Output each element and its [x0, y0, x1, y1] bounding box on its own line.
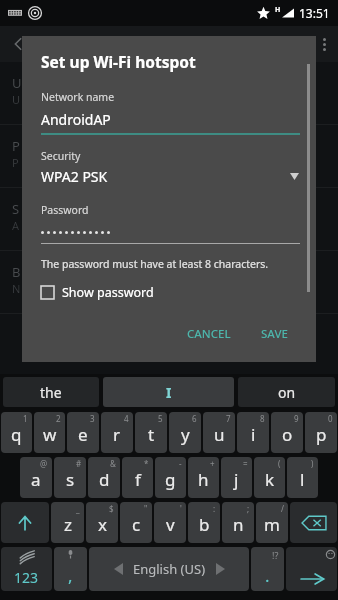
- button[interactable]: ;: [222, 502, 254, 543]
- button[interactable]: CANCEL: [179, 320, 239, 348]
- staticText: P: [12, 137, 20, 155]
- staticText: A: [12, 218, 20, 233]
- staticText: p: [316, 423, 327, 446]
- staticText: ): [311, 458, 314, 469]
- staticText: j: [234, 468, 239, 491]
- button[interactable]: 3: [67, 412, 99, 453]
- button[interactable]: :: [188, 502, 220, 543]
- staticText: =: [243, 458, 248, 469]
- staticText: /: [281, 503, 284, 514]
- staticText: e: [78, 423, 88, 446]
- staticText: s: [66, 468, 75, 491]
- button[interactable]: 123: [1, 547, 52, 591]
- staticText: q: [11, 423, 22, 446]
- staticText: t: [148, 423, 155, 446]
- staticText: d: [99, 468, 110, 491]
- button[interactable]: SAVE: [253, 320, 296, 348]
- button[interactable]: @: [20, 457, 52, 498]
- staticText: w: [43, 423, 57, 446]
- button[interactable]: 5: [135, 412, 167, 453]
- staticText: i: [251, 423, 256, 446]
- staticText: 3: [90, 413, 95, 424]
- staticText: 1: [23, 413, 28, 424]
- staticText: 5: [158, 413, 163, 424]
- staticText: Show password: [62, 284, 154, 301]
- button[interactable]: +: [188, 457, 219, 498]
- staticText: WPA2 PSK: [41, 167, 290, 186]
- staticText: ': [180, 503, 182, 514]
- button[interactable]: $: [86, 502, 118, 543]
- staticText: @: [40, 458, 48, 469]
- button[interactable]: English (US): [89, 547, 249, 591]
- button[interactable]: 9: [271, 412, 303, 453]
- staticText: l: [300, 468, 305, 491]
- staticText: H: [275, 5, 281, 15]
- staticText: Password: [41, 203, 89, 217]
- button[interactable]: -: [155, 457, 186, 498]
- staticText: $: [109, 503, 114, 514]
- button[interactable]: 4: [101, 412, 133, 453]
- staticText: B: [12, 263, 21, 281]
- staticText: I: [166, 383, 172, 402]
- staticText: h: [198, 468, 209, 491]
- staticText: 0: [328, 413, 333, 424]
- staticText: ;: [247, 503, 250, 514]
- button[interactable]: ": [120, 502, 152, 543]
- button[interactable]: 1: [1, 412, 32, 453]
- staticText: z: [64, 513, 72, 536]
- button[interactable]: ): [287, 457, 318, 498]
- button[interactable]: 0: [305, 412, 337, 453]
- button[interactable]: ,: [54, 547, 87, 591]
- button[interactable]: _: [51, 502, 84, 543]
- staticText: u: [214, 423, 225, 446]
- button[interactable]: 2: [34, 412, 65, 453]
- staticText: 7: [226, 413, 231, 424]
- button[interactable]: the: [3, 377, 99, 407]
- button[interactable]: #: [54, 457, 86, 498]
- button[interactable]: Shift: [1, 502, 49, 543]
- staticText: 2: [56, 413, 61, 424]
- staticText: the: [40, 383, 62, 402]
- staticText: 4: [124, 413, 129, 424]
- button[interactable]: =: [221, 457, 252, 498]
- button[interactable]: 6: [169, 412, 201, 453]
- staticText: #: [76, 458, 82, 469]
- staticText: n: [233, 513, 244, 536]
- staticText: k: [265, 468, 275, 491]
- staticText: x: [98, 513, 107, 536]
- button[interactable]: 8: [237, 412, 269, 453]
- staticText: S: [12, 200, 20, 218]
- staticText: The password must have at least 8 charac…: [41, 257, 269, 271]
- button[interactable]: *: [122, 457, 153, 498]
- staticText: U: [12, 74, 22, 92]
- staticText: -: [179, 458, 182, 469]
- staticText: on: [278, 383, 296, 402]
- staticText: b: [199, 513, 210, 536]
- button[interactable]: Enter: [286, 547, 337, 591]
- button[interactable]: (: [254, 457, 285, 498]
- button[interactable]: [41, 226, 300, 244]
- staticText: 9: [294, 413, 299, 424]
- staticText: _: [76, 503, 80, 514]
- staticText: c: [132, 513, 141, 536]
- staticText: N: [12, 281, 21, 296]
- button[interactable]: on: [238, 377, 335, 407]
- button[interactable]: 7: [203, 412, 235, 453]
- button[interactable]: I: [103, 377, 234, 407]
- button[interactable]: ': [154, 502, 186, 543]
- button[interactable]: /: [256, 502, 288, 543]
- staticText: 13:51: [299, 5, 330, 21]
- button[interactable]: Backspace: [290, 502, 337, 543]
- staticText: English (US): [133, 560, 206, 578]
- button[interactable]: !?: [251, 547, 284, 591]
- staticText: Set up Wi-Fi hotspot: [41, 51, 196, 72]
- staticText: 6: [192, 413, 197, 424]
- button[interactable]: WPA2 PSK: [41, 167, 300, 186]
- staticText: .: [265, 564, 270, 587]
- staticText: o: [282, 423, 293, 446]
- button[interactable]: Show password: [41, 284, 154, 301]
- staticText: *: [144, 458, 149, 469]
- staticText: &: [110, 458, 116, 469]
- button[interactable]: AndroidAP: [41, 110, 300, 135]
- button[interactable]: &: [88, 457, 120, 498]
